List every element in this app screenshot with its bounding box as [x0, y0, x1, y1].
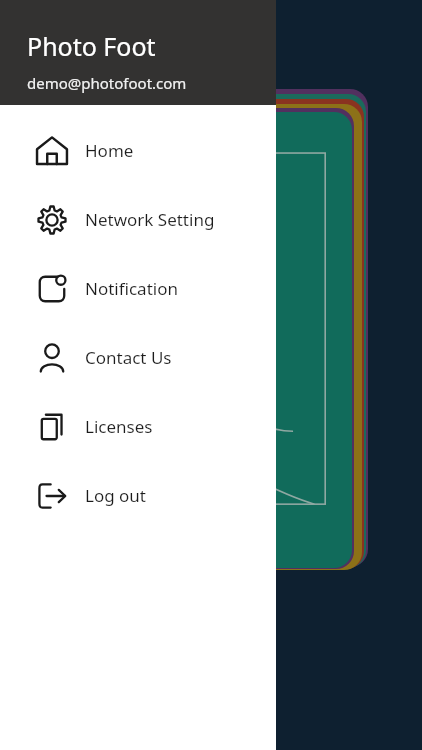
staticText: Notification [85, 277, 178, 300]
other: Licenses [35, 410, 69, 444]
other: Contact Us [35, 341, 69, 375]
other: Notification [35, 272, 69, 306]
other: Network Setting [35, 203, 69, 237]
staticText: Network Setting [85, 208, 215, 231]
staticText: Home [85, 139, 134, 162]
button[interactable]: Network Setting [0, 185, 276, 254]
button[interactable]: Log out [0, 461, 276, 530]
other: Log out [35, 479, 69, 513]
other: Home [35, 134, 69, 168]
staticText: Log out [85, 484, 146, 507]
button[interactable]: Licenses [0, 392, 276, 461]
staticText: Surfaces [100, 501, 169, 524]
staticText: Licenses [85, 415, 153, 438]
button[interactable]: Surfaces [84, 112, 352, 568]
staticText: demo@photofoot.com [27, 73, 187, 93]
button[interactable]: Contact Us [0, 323, 276, 392]
staticText: Contact Us [85, 346, 172, 369]
staticText: Photo Foot [27, 29, 156, 63]
button[interactable]: Home [0, 116, 276, 185]
button[interactable]: Notification [0, 254, 276, 323]
